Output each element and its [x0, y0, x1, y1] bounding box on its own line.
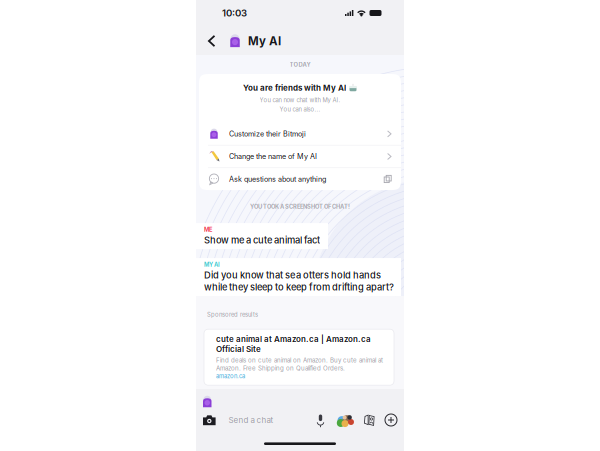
staticText: cute animal at Amazon.ca | Amazon.ca: [216, 334, 371, 344]
staticText: Sponsored results: [207, 311, 258, 318]
staticText: Customize their Bitmoji: [229, 129, 306, 138]
button[interactable]: cute animal at Amazon.ca | Amazon.ca: [204, 329, 394, 385]
staticText: YOU TOOK A SCREENSHOT OF CHAT!: [250, 203, 350, 210]
staticText: You can now chat with My AI.: [259, 97, 340, 104]
staticText: Find deals on cute animal on Amazon. Buy…: [216, 356, 383, 364]
button[interactable]: Back: [203, 31, 221, 51]
staticText: Show me a cute animal fact: [204, 234, 320, 246]
button[interactable]: More options: [385, 414, 397, 426]
staticText: TODAY: [289, 61, 310, 68]
button[interactable]: Stickers: [363, 414, 375, 426]
staticText: Send a chat: [229, 415, 274, 425]
button[interactable]: Change the name of My AI: [199, 145, 401, 167]
staticText: MY AI: [204, 261, 220, 268]
staticText: 10:03: [222, 7, 247, 19]
button[interactable]: Ask questions about anything: [199, 168, 401, 190]
staticText: Ask questions about anything: [229, 175, 326, 183]
button[interactable]: Voice message: [316, 414, 324, 426]
staticText: You can also...: [279, 106, 320, 113]
staticText: Change the name of My AI: [229, 152, 317, 161]
button[interactable]: Camera: [203, 415, 216, 425]
staticText: My AI: [248, 34, 281, 48]
staticText: while they sleep to keep from drifting a…: [204, 281, 394, 293]
staticText: amazon.ca: [216, 373, 245, 380]
staticText: Amazon. Free Shipping on Qualified Order…: [216, 364, 345, 372]
staticText: ME: [204, 226, 212, 233]
button[interactable]: Bitmoji: [337, 413, 354, 426]
button[interactable]: Customize their Bitmoji: [199, 123, 401, 145]
staticText: You are friends with My AI: [243, 83, 346, 93]
staticText: Official Site: [216, 344, 261, 354]
staticText: Did you know that sea otters hold hands: [204, 269, 381, 281]
